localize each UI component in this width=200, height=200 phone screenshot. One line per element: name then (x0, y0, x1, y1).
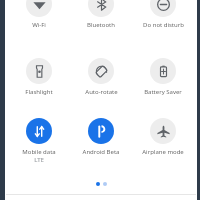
button[interactable]: Wi-Fi (10, 0, 68, 29)
staticText: Flashlight (25, 88, 53, 96)
staticText: Do not disturb (143, 21, 184, 29)
button[interactable]: Flashlight (10, 58, 68, 96)
staticText: Airplane mode (142, 148, 184, 156)
button[interactable]: Do not disturb (134, 0, 192, 29)
button[interactable]: Airplane mode (134, 118, 192, 156)
button[interactable]: Battery Saver (134, 58, 192, 96)
staticText: LTE (34, 156, 44, 164)
staticText: Android Beta Program (72, 148, 130, 156)
button[interactable]: Auto-rotate (72, 58, 130, 96)
button[interactable]: Mobile data (10, 118, 68, 164)
button[interactable]: Android Beta Program (72, 118, 130, 156)
staticText: Bluetooth (87, 21, 115, 29)
staticText: Auto-rotate (85, 88, 118, 96)
staticText: Wi-Fi (32, 21, 46, 29)
staticText: Mobile data (22, 148, 56, 156)
staticText: Battery Saver (144, 88, 182, 96)
button[interactable]: Bluetooth (72, 0, 130, 29)
